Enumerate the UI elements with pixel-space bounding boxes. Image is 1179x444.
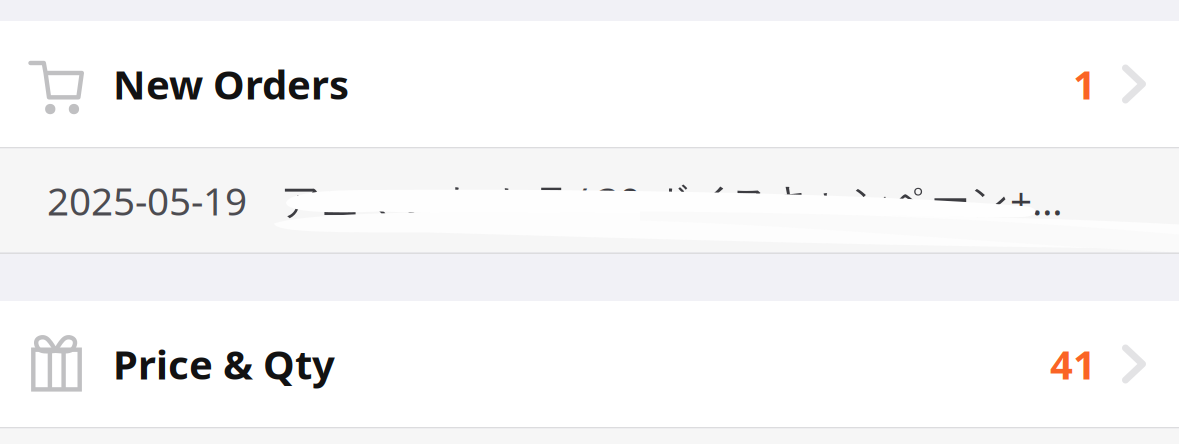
staticText: 2025-05-19 <box>47 175 247 226</box>
staticText: 1 <box>1073 57 1096 110</box>
staticText: Price & Qty <box>113 337 335 390</box>
button[interactable]: Price & Qty <box>0 301 1179 427</box>
button[interactable]: New Orders <box>0 21 1179 147</box>
staticText: アニマスト セラ/ 30 ボイスキャンペーン+… <box>281 175 1063 226</box>
staticText: 41 <box>1050 337 1096 390</box>
staticText: New Orders <box>113 57 349 110</box>
